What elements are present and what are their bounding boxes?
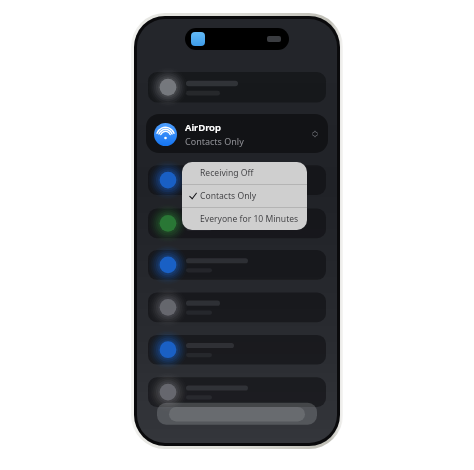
staticText: Everyone for 10 Minutes [200,213,299,225]
other: Expand AirDrop options [310,129,320,139]
staticText: AirDrop [185,121,221,134]
staticText: Contacts Only [200,190,257,202]
button[interactable]: Contacts Only [182,185,307,207]
button[interactable]: Receiving Off [182,162,307,184]
button[interactable]: Everyone for 10 Minutes [182,208,307,230]
staticText: Contacts Only [185,135,244,147]
staticText: Receiving Off [200,167,254,179]
button[interactable]: AirDrop [146,114,328,153]
